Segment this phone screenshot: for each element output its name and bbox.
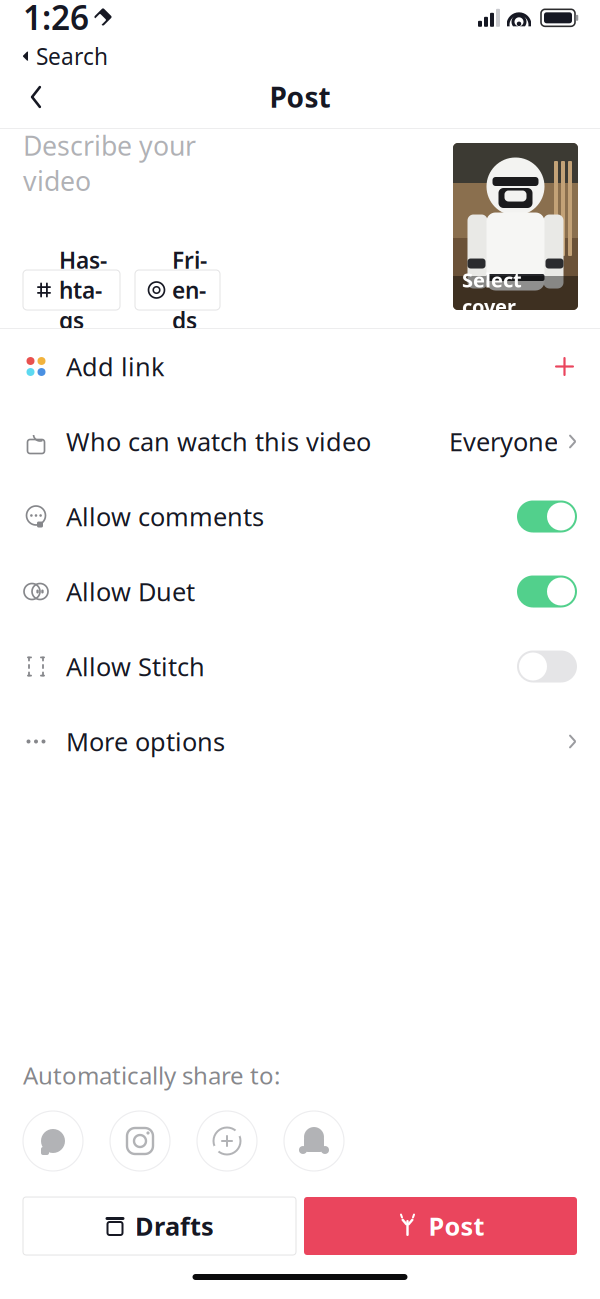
- button[interactable]: Back: [14, 75, 58, 119]
- button[interactable]: Allow Duet: [0, 554, 600, 629]
- button[interactable]: Friends: [135, 270, 220, 310]
- staticText: Search: [36, 41, 108, 71]
- button[interactable]: Post: [304, 1197, 577, 1255]
- button[interactable]: Who can watch this video: [0, 404, 600, 479]
- button[interactable]: Share to Instagram Story: [197, 1111, 257, 1171]
- staticText: Friends: [172, 245, 207, 335]
- button[interactable]: Drafts: [23, 1197, 296, 1255]
- button[interactable]: Select cover: [453, 143, 578, 310]
- button[interactable]: Describe your video: [23, 143, 226, 183]
- staticText: Describe your video: [23, 128, 196, 198]
- staticText: 1:26: [23, 0, 89, 39]
- staticText: Allow comments: [66, 500, 264, 533]
- staticText: Everyone: [449, 425, 558, 458]
- staticText: Hashtags: [59, 245, 107, 335]
- staticText: Allow Stitch: [66, 650, 205, 683]
- button[interactable]: Allow Stitch: [0, 629, 600, 704]
- button[interactable]: Add link: [0, 329, 600, 404]
- staticText: Post: [428, 1209, 484, 1243]
- staticText: Who can watch this video: [66, 425, 371, 458]
- staticText: Select cover: [462, 266, 522, 319]
- button[interactable]: More options: [0, 704, 600, 779]
- button[interactable]: Hashtags: [23, 270, 120, 310]
- staticText: Post: [269, 78, 330, 116]
- button[interactable]: Share to Messages: [23, 1111, 83, 1171]
- button[interactable]: Share to Snapchat: [284, 1111, 344, 1171]
- staticText: Drafts: [135, 1209, 214, 1243]
- button[interactable]: Share to Instagram: [110, 1111, 170, 1171]
- button[interactable]: Allow comments: [0, 479, 600, 554]
- staticText: Automatically share to:: [23, 1059, 280, 1091]
- staticText: Allow Duet: [66, 575, 195, 608]
- staticText: Add link: [66, 350, 165, 383]
- staticText: More options: [66, 725, 225, 758]
